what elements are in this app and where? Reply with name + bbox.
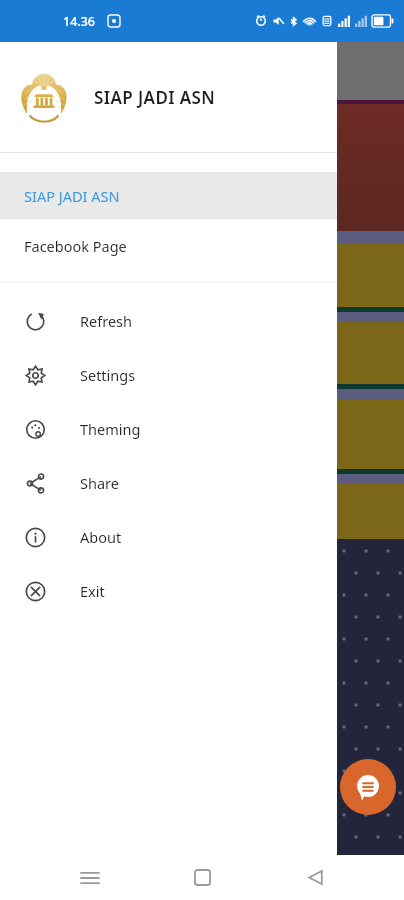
button[interactable]: About — [0, 510, 337, 564]
staticText: Facebook Page — [24, 236, 127, 256]
button[interactable]: Exit — [0, 564, 337, 618]
staticText: USAHA JADI — [150, 139, 262, 165]
button[interactable]: Facebook Page — [0, 219, 337, 273]
button[interactable]: Settings — [0, 348, 337, 402]
button[interactable]: Home — [179, 855, 225, 900]
staticText: 14.36 — [63, 13, 96, 30]
staticText: SIAP JADI ASN — [24, 186, 120, 206]
button[interactable]: Back — [292, 855, 338, 900]
button[interactable]: Refresh — [0, 294, 337, 348]
button[interactable]: Recent apps — [67, 855, 113, 900]
staticText: Settings — [80, 365, 136, 385]
staticText: Refresh — [80, 311, 132, 331]
button[interactable]: SIAP JADI ASN — [0, 172, 337, 219]
staticText: Theming — [80, 419, 141, 439]
staticText: LULUS — [150, 171, 212, 197]
staticText: SIAP JADI ASN — [94, 86, 216, 109]
button[interactable]: Theming — [0, 402, 337, 456]
button[interactable]: Open chat — [340, 759, 396, 815]
staticText: About — [80, 527, 122, 547]
staticText: Exit — [80, 581, 105, 601]
button[interactable]: Share — [0, 456, 337, 510]
staticText: Share — [80, 473, 119, 493]
